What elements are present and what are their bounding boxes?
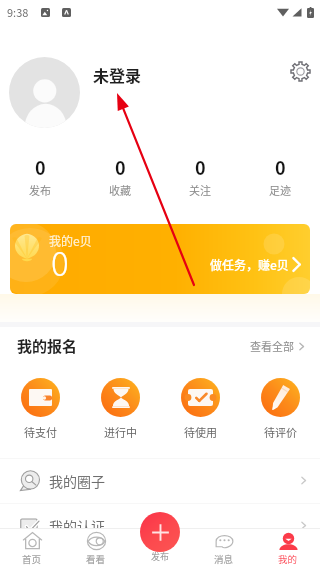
staticText: 我的圈子 — [49, 471, 105, 491]
button[interactable]: 首页 — [0, 528, 64, 568]
button[interactable]: 进行中 — [80, 365, 160, 458]
button[interactable]: 待支付 — [0, 365, 80, 458]
button[interactable]: 0 — [240, 145, 320, 197]
staticText: 发布 — [29, 182, 51, 197]
staticText: 9:38 — [7, 4, 29, 20]
button[interactable]: 我的圈子 — [19, 458, 308, 503]
staticText: 关注 — [189, 182, 211, 197]
staticText: 查看全部 — [250, 338, 294, 354]
staticText: 0 — [35, 154, 46, 180]
button[interactable]: 做任务，赚e贝 — [210, 255, 302, 274]
staticText: 足迹 — [269, 182, 291, 197]
staticText: 待使用 — [184, 424, 217, 440]
button[interactable]: 0 — [160, 145, 240, 197]
button[interactable]: 待使用 — [160, 365, 240, 458]
button[interactable]: 我的认证 — [19, 503, 308, 548]
button[interactable]: 我的 — [256, 528, 320, 568]
staticText: 我的认证 — [49, 516, 105, 536]
staticText: 消息 — [214, 552, 234, 566]
button[interactable]: 0 — [0, 145, 80, 197]
staticText: 我的报名 — [17, 335, 78, 357]
staticText: 进行中 — [104, 424, 137, 440]
staticText: 我的 — [278, 552, 298, 566]
staticText: 0 — [115, 154, 126, 180]
staticText: 未登录 — [93, 63, 142, 86]
staticText: 0 — [51, 238, 69, 286]
button[interactable]: 待评价 — [240, 365, 320, 458]
button[interactable]: 未登录 — [93, 63, 142, 86]
button[interactable]: 发布 — [140, 512, 180, 552]
staticText: 收藏 — [109, 182, 131, 197]
staticText: 首页 — [22, 552, 42, 566]
staticText: 待评价 — [264, 424, 297, 440]
button[interactable]: 我的报名 — [17, 335, 78, 357]
staticText: 发布 — [151, 550, 170, 563]
button[interactable]: 查看全部 — [248, 336, 308, 356]
staticText: 待支付 — [24, 424, 57, 440]
staticText: 0 — [195, 154, 206, 180]
staticText: 做任务，赚e贝 — [210, 256, 289, 273]
button[interactable]: 看看 — [64, 528, 128, 568]
button[interactable]: 我的e贝 — [10, 224, 310, 294]
button[interactable]: 0 — [80, 145, 160, 197]
button[interactable]: 消息 — [192, 528, 256, 568]
button[interactable]: Settings — [287, 58, 313, 84]
staticText: 看看 — [86, 552, 106, 566]
staticText: 我的e贝 — [49, 232, 92, 249]
staticText: 0 — [275, 154, 286, 180]
button[interactable]: 头像 — [9, 57, 80, 128]
